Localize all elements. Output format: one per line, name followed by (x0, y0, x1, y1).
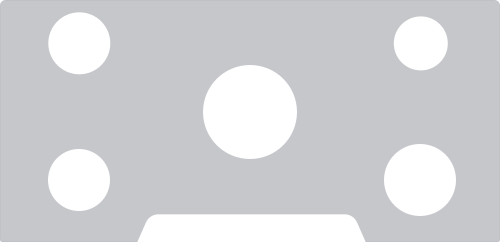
button[interactable]: App (384, 144, 456, 216)
button[interactable]: App (48, 12, 110, 74)
button[interactable]: App (48, 149, 110, 211)
button[interactable]: App (203, 65, 297, 159)
button[interactable]: App (394, 16, 448, 70)
